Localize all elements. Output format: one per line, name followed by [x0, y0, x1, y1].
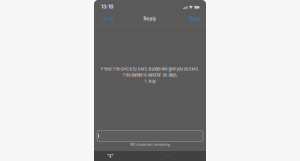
staticText: Reply	[189, 16, 200, 21]
button[interactable]: Message	[97, 130, 203, 141]
staticText: Reply	[143, 16, 156, 22]
staticText: 1. Buy	[144, 79, 155, 84]
button[interactable]: Reply	[188, 14, 201, 24]
button[interactable]: Keyboard	[106, 153, 115, 159]
staticText: This bundle is valid for 30 days.	[122, 73, 177, 77]
staticText: Cancel	[101, 16, 114, 22]
staticText: 160 characters remaining	[130, 142, 170, 147]
staticText: Y'ello! The GHC8.52 SMS Bundle will give…	[100, 66, 199, 71]
staticText: 13:18	[101, 3, 113, 10]
button[interactable]: Cancel	[100, 14, 115, 24]
